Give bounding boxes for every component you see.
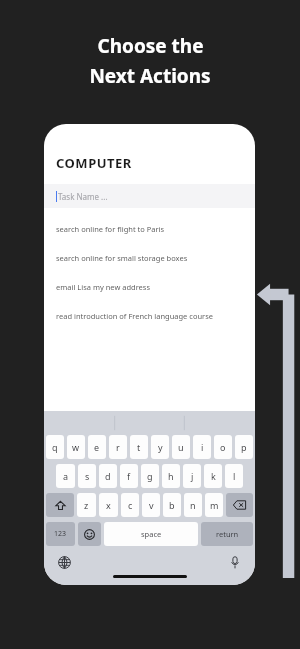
button[interactable]: Dictation	[227, 554, 243, 570]
button[interactable]: Backspace	[226, 493, 253, 517]
button[interactable]: Change keyboard language	[56, 554, 72, 570]
staticText: f	[127, 470, 131, 482]
button[interactable]: Numbers	[46, 522, 75, 546]
button[interactable]: r	[109, 435, 127, 459]
staticText: search online for small storage boxes	[56, 253, 188, 263]
staticText: m	[210, 499, 219, 511]
staticText: y	[158, 441, 163, 453]
button[interactable]: h	[162, 464, 180, 488]
staticText: c	[128, 499, 133, 511]
button[interactable]: v	[142, 493, 160, 517]
staticText: k	[211, 470, 216, 482]
staticText: o	[220, 441, 226, 453]
button[interactable]: g	[141, 464, 159, 488]
staticText: Next Actions	[89, 63, 211, 89]
button[interactable]: q	[46, 435, 64, 459]
staticText: s	[85, 470, 90, 482]
button[interactable]: j	[183, 464, 201, 488]
staticText: h	[168, 470, 174, 482]
button[interactable]: return	[201, 522, 253, 546]
staticText: email Lisa my new address	[56, 282, 151, 292]
staticText: p	[241, 441, 247, 453]
staticText: r	[116, 441, 120, 453]
staticText: i	[201, 441, 204, 453]
button[interactable]: email Lisa my new address	[44, 272, 255, 301]
button[interactable]: d	[99, 464, 117, 488]
button[interactable]: s	[78, 464, 96, 488]
button[interactable]: search online for flight to Paris	[44, 214, 255, 243]
staticText: space	[141, 529, 162, 539]
button[interactable]: Shift	[46, 493, 74, 517]
button[interactable]: b	[163, 493, 181, 517]
staticText: u	[178, 441, 184, 453]
staticText: a	[63, 470, 69, 482]
button[interactable]: e	[88, 435, 106, 459]
button[interactable]: y	[151, 435, 169, 459]
button[interactable]: space	[104, 522, 198, 546]
button[interactable]: search online for small storage boxes	[44, 243, 255, 272]
button[interactable]: m	[205, 493, 223, 517]
button[interactable]: p	[235, 435, 253, 459]
button[interactable]: f	[120, 464, 138, 488]
staticText: read introduction of French language cou…	[56, 311, 213, 321]
staticText: COMPUTER	[56, 154, 132, 172]
button[interactable]: n	[184, 493, 202, 517]
staticText: 123	[54, 529, 67, 539]
staticText: Choose the	[97, 33, 204, 59]
button[interactable]: a	[56, 464, 75, 488]
staticText: j	[191, 470, 194, 482]
staticText: b	[169, 499, 175, 511]
staticText: w	[72, 441, 80, 453]
staticText: g	[147, 470, 153, 482]
staticText: q	[52, 441, 58, 453]
staticText: e	[94, 441, 100, 453]
button[interactable]: x	[99, 493, 118, 517]
button[interactable]: Emoji	[78, 522, 101, 546]
staticText: n	[190, 499, 196, 511]
staticText: return	[216, 529, 239, 539]
button[interactable]: w	[67, 435, 85, 459]
staticText: d	[105, 470, 111, 482]
staticText: Task Name ...	[58, 191, 108, 202]
button[interactable]: i	[193, 435, 211, 459]
button[interactable]: o	[214, 435, 232, 459]
button[interactable]: t	[130, 435, 148, 459]
staticText: t	[137, 441, 141, 453]
button[interactable]: Task Name ...	[44, 184, 255, 208]
button[interactable]: z	[77, 493, 96, 517]
staticText: v	[149, 499, 154, 511]
staticText: z	[84, 499, 89, 511]
button[interactable]: c	[121, 493, 139, 517]
staticText: x	[106, 499, 111, 511]
button[interactable]: l	[225, 464, 243, 488]
button[interactable]: read introduction of French language cou…	[44, 301, 255, 330]
button[interactable]: u	[172, 435, 190, 459]
button[interactable]: k	[204, 464, 222, 488]
staticText: search online for flight to Paris	[56, 224, 165, 234]
staticText: l	[233, 470, 236, 482]
